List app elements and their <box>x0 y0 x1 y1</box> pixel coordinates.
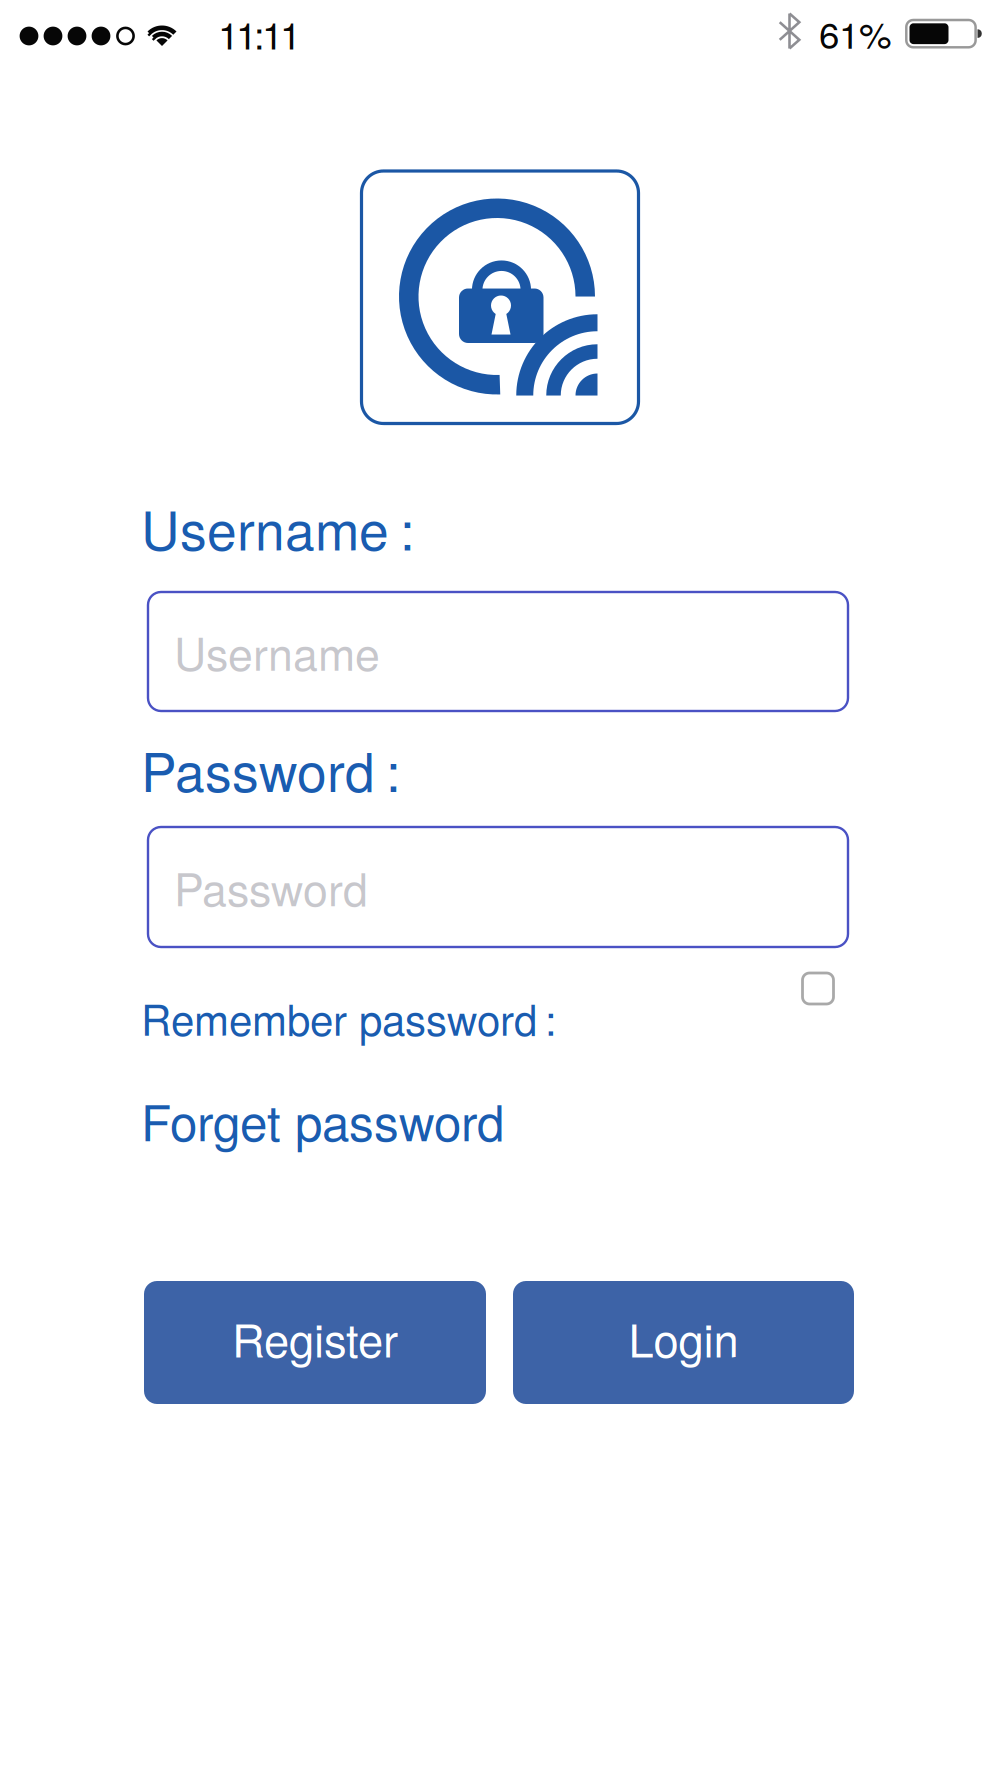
staticText: Forget password <box>141 1085 504 1155</box>
staticText: Remember password : <box>141 987 557 1047</box>
button[interactable]: Remember password <box>802 973 833 1004</box>
button[interactable]: Password <box>148 827 848 947</box>
staticText: 61% <box>819 7 892 59</box>
staticText: Username : <box>141 489 415 566</box>
staticText: Password : <box>141 731 401 807</box>
staticText: Register <box>232 1305 398 1370</box>
staticText: Password <box>174 855 368 919</box>
button[interactable]: Username <box>148 592 848 711</box>
staticText: Username <box>174 619 380 683</box>
staticText: Login <box>628 1305 738 1370</box>
staticText: 11:11 <box>218 6 301 60</box>
button[interactable]: Login <box>513 1281 854 1404</box>
button[interactable]: Register <box>144 1281 486 1404</box>
button[interactable]: Forget password <box>141 1085 504 1155</box>
